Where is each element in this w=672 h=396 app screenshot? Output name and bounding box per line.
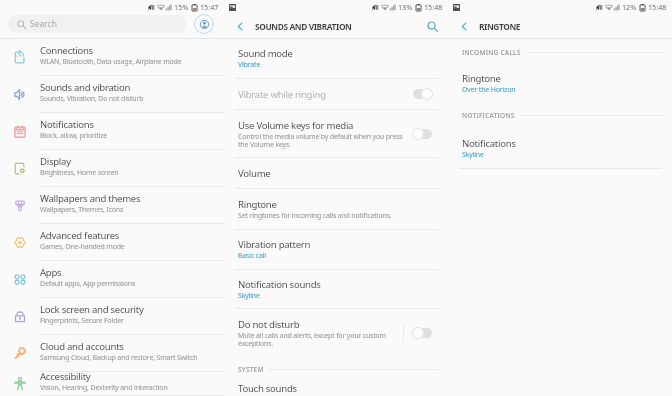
staticText: Vision, Hearing, Dexterity and interacti… xyxy=(40,383,168,393)
staticText: Cloud and accounts xyxy=(40,340,124,353)
staticText: 12% xyxy=(622,2,637,12)
staticText: Use Volume keys for media xyxy=(238,119,354,132)
button[interactable]: Account xyxy=(194,14,214,34)
button[interactable]: Ringtone xyxy=(448,65,672,101)
button[interactable]: Cloud and accounts xyxy=(0,335,224,372)
staticText: Display xyxy=(40,155,71,168)
staticText: Samsung Cloud, Backup and restore, Smart… xyxy=(40,353,198,363)
staticText: 13% xyxy=(398,2,413,12)
staticText: Volume xyxy=(238,167,271,180)
button[interactable]: Notifications xyxy=(448,129,672,169)
button[interactable]: Lock screen and security xyxy=(0,298,224,335)
staticText: Sounds and vibration xyxy=(40,81,131,94)
staticText: Touch sounds xyxy=(238,382,297,395)
staticText: SYSTEM xyxy=(238,365,264,374)
button[interactable]: Notifications xyxy=(0,113,224,150)
staticText: Notification sounds xyxy=(238,278,321,291)
staticText: Skyline xyxy=(238,291,260,301)
staticText: INCOMING CALLS xyxy=(462,48,521,57)
button[interactable]: Apps xyxy=(0,261,224,298)
staticText: 15:48 xyxy=(648,2,667,12)
staticText: RINGTONE xyxy=(479,21,521,32)
staticText: Vibrate xyxy=(238,60,261,70)
staticText: 15% xyxy=(174,2,189,12)
button[interactable]: Sound mode xyxy=(224,39,448,79)
button[interactable]: Search xyxy=(8,15,186,33)
staticText: Brightness, Home screen xyxy=(40,168,119,178)
staticText: Sounds, Vibration, Do not disturb xyxy=(40,94,144,104)
staticText: WLAN, Bluetooth, Data usage, Airplane mo… xyxy=(40,57,182,67)
button[interactable]: Vibrate while ringing xyxy=(224,79,448,110)
staticText: Basic call xyxy=(238,251,266,261)
button[interactable]: Connections xyxy=(0,39,224,76)
button[interactable]: Search xyxy=(416,14,448,38)
button[interactable]: Sounds and vibration xyxy=(0,76,224,113)
staticText: 15:47 xyxy=(200,2,219,12)
staticText: Advanced features xyxy=(40,229,120,242)
button[interactable]: Use Volume keys for media xyxy=(224,110,448,158)
staticText: NOTIFICATIONS xyxy=(462,111,515,120)
staticText: Ringtone xyxy=(462,72,501,85)
staticText: Do not disturb xyxy=(238,318,300,331)
staticText: Set ringtones for incoming calls and not… xyxy=(238,211,392,221)
button[interactable]: Do not disturb xyxy=(224,309,448,357)
staticText: 15:48 xyxy=(424,2,443,12)
staticText: Default apps, App permissions xyxy=(40,279,136,289)
button[interactable]: Back xyxy=(224,14,255,38)
staticText: Vibrate while ringing xyxy=(238,88,326,101)
staticText: Wallpapers, Themes, Icons xyxy=(40,205,124,215)
button[interactable]: Advanced features xyxy=(0,224,224,261)
staticText: SOUNDS AND VIBRATION xyxy=(255,21,352,32)
staticText: Skyline xyxy=(462,150,484,160)
staticText: Ringtone xyxy=(238,198,277,211)
staticText: Connections xyxy=(40,44,93,57)
staticText: Lock screen and security xyxy=(40,303,144,316)
button[interactable]: Accessibility xyxy=(0,372,224,396)
staticText: Over the Horizon xyxy=(462,85,516,95)
staticText: Vibration pattern xyxy=(238,238,311,251)
button[interactable]: Ringtone xyxy=(224,189,448,230)
staticText: Games, One-handed mode xyxy=(40,242,125,252)
button[interactable]: Wallpapers and themes xyxy=(0,187,224,224)
button[interactable]: Notification sounds xyxy=(224,270,448,309)
staticText: Notifications xyxy=(462,137,516,150)
staticText: Mute all calls and alerts, except for yo… xyxy=(238,331,386,348)
staticText: Notifications xyxy=(40,118,94,131)
staticText: Search xyxy=(30,18,57,30)
staticText: Block, allow, prioritize xyxy=(40,131,108,141)
staticText: Sound mode xyxy=(238,47,293,60)
staticText: Control the media volume by default when… xyxy=(238,132,403,149)
staticText: Fingerprints, Secure Folder xyxy=(40,316,124,326)
button[interactable]: Vibration pattern xyxy=(224,230,448,270)
button[interactable]: Volume xyxy=(224,158,448,189)
staticText: Apps xyxy=(40,266,62,279)
button[interactable]: Display xyxy=(0,150,224,187)
button[interactable]: Back xyxy=(448,14,479,38)
staticText: Accessibility xyxy=(40,370,91,383)
staticText: Wallpapers and themes xyxy=(40,192,141,205)
